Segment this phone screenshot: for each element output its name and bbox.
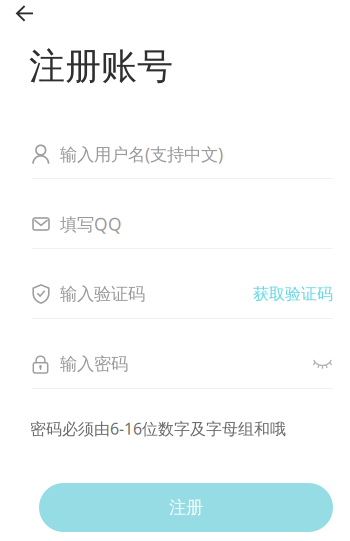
staticText: 填写QQ [60, 212, 122, 235]
staticText: 注册账号 [29, 44, 173, 89]
button[interactable]: 获取验证码 [253, 284, 333, 304]
staticText: 输入用户名(支持中文) [60, 142, 223, 165]
button[interactable]: Back [0, 0, 47, 30]
staticText: 输入密码 [60, 353, 128, 375]
button[interactable]: 注册 [39, 483, 333, 532]
button[interactable]: Show password [312, 354, 333, 374]
staticText: 输入验证码 [60, 283, 145, 305]
staticText: 获取验证码 [253, 284, 333, 304]
staticText: 密码必须由6-16位数字及字母组和哦 [30, 418, 286, 439]
staticText: 注册 [169, 497, 203, 518]
